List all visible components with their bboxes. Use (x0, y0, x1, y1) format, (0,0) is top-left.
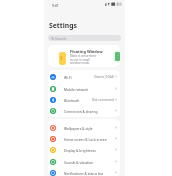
button[interactable]: Notifications & status bar (48, 167, 120, 176)
staticText: Notifications & status bar (64, 171, 104, 175)
button[interactable]: Wi-Fi (48, 71, 120, 82)
staticText: Wi-Fi (64, 75, 72, 79)
staticText: Search (55, 36, 67, 41)
button[interactable]: Sounds & vibration (48, 156, 120, 167)
button[interactable]: Home screen & Lock screen (48, 133, 120, 144)
staticText: Mobile network (64, 87, 89, 91)
staticText: Settings (49, 21, 77, 30)
staticText: Xiaomi_5GA8 (94, 75, 114, 79)
button[interactable]: Connection & sharing (48, 105, 120, 116)
staticText: Bluetooth (64, 98, 80, 102)
staticText: 9:41 (52, 3, 59, 8)
button[interactable]: Search (48, 35, 121, 41)
button[interactable]: Wallpapers & style (48, 122, 120, 133)
staticText: Wallpapers & style (64, 126, 93, 130)
button[interactable]: Bluetooth (48, 94, 120, 105)
staticText: Not connected (92, 98, 114, 102)
staticText: Floating Window (70, 49, 103, 54)
staticText: Make it convenient to use in small windo… (70, 54, 98, 65)
staticText: Sounds & vibration (64, 160, 94, 164)
button[interactable]: Floating Window (48, 45, 120, 67)
staticText: Display & brightness (64, 148, 96, 152)
button[interactable]: Mobile network (48, 83, 120, 94)
staticText: Home screen & Lock screen (64, 137, 107, 141)
button[interactable]: Display & brightness (48, 144, 120, 155)
staticText: Connection & sharing (64, 109, 98, 113)
